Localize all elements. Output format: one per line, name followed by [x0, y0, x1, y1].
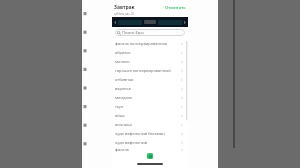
staticText: Завтрак	[114, 4, 135, 11]
staticText: фасоль	[115, 147, 180, 152]
staticText: Поиск Еды	[122, 30, 144, 36]
staticText: Отменить	[165, 5, 186, 11]
staticText: отбивная	[115, 77, 180, 82]
button[interactable]: варенье	[112, 84, 188, 93]
button[interactable]: яичница	[112, 120, 188, 129]
button[interactable]: чудо вафельный	[112, 138, 188, 147]
staticText: миндаль	[115, 95, 180, 100]
staticText: горошек консервированный	[115, 68, 180, 73]
staticText: торт	[115, 104, 180, 109]
button[interactable]: чудо вафельный багамин	[112, 129, 188, 138]
button[interactable]: фасоль	[112, 147, 188, 152]
staticText: суббота, авг. 24	[114, 12, 134, 16]
button[interactable]: молоко	[112, 57, 188, 66]
staticText: варенье	[115, 86, 180, 91]
button[interactable]: торт	[112, 102, 188, 111]
button[interactable]: миндаль	[112, 93, 188, 102]
button[interactable]: фасоль консервированная	[112, 39, 188, 48]
button[interactable]: яйцо	[112, 111, 188, 120]
button[interactable]: Banner	[112, 17, 188, 27]
button[interactable]: абрикос	[112, 48, 188, 57]
staticText: чудо вафельный	[115, 140, 180, 145]
button[interactable]: горошек консервированный	[112, 66, 188, 75]
button[interactable]: Отменить	[163, 4, 186, 11]
staticText: чудо вафельный багамин	[115, 131, 180, 136]
staticText: яйцо	[115, 113, 180, 118]
staticText: молоко	[115, 59, 180, 64]
staticText: фасоль консервированная	[115, 41, 180, 46]
button[interactable]: Поиск Еды	[115, 29, 185, 36]
button[interactable]: отбивная	[112, 75, 188, 84]
staticText: абрикос	[115, 50, 180, 55]
button[interactable]: Add food	[147, 153, 153, 159]
staticText: яичница	[115, 122, 180, 127]
